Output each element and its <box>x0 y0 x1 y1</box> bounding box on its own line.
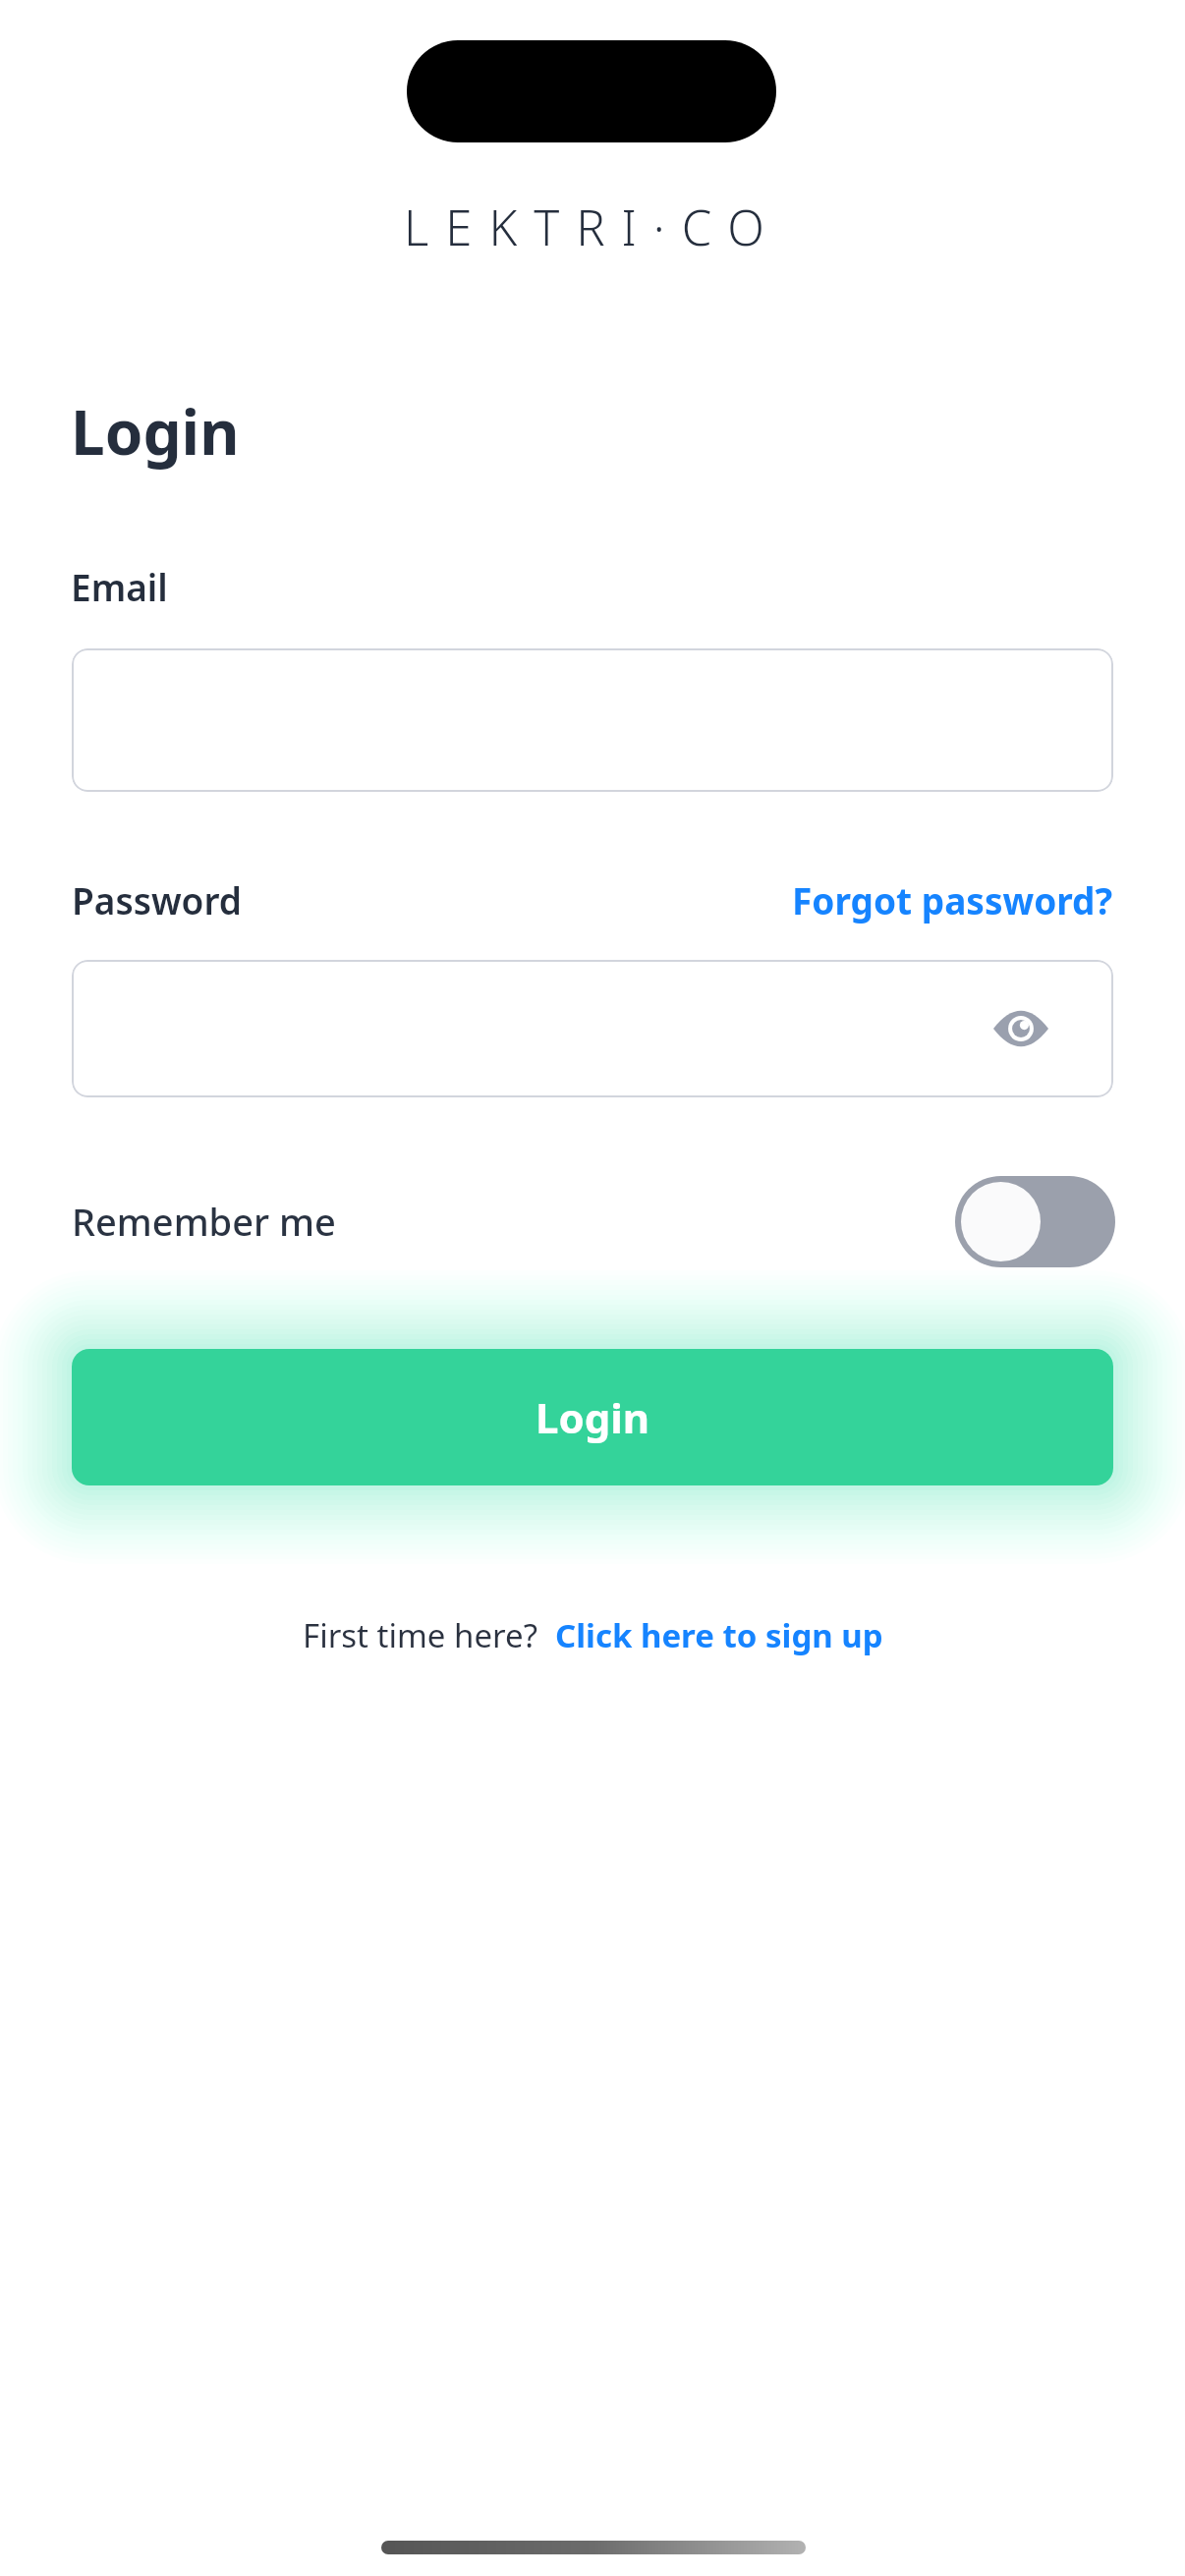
staticText: Click here to sign up <box>555 1613 883 1657</box>
staticText: First time here? <box>303 1613 537 1657</box>
button[interactable]: Email field <box>72 648 1113 792</box>
button[interactable]: Login <box>72 1349 1113 1485</box>
staticText: Login <box>536 1389 650 1445</box>
button[interactable]: Remember me <box>72 1175 1115 1267</box>
staticText: Forgot password? <box>792 875 1113 924</box>
button[interactable]: Password field <box>72 960 1113 1097</box>
button[interactable]: Forgot password? <box>792 875 1113 924</box>
staticText: LEKTRI·CO <box>404 195 781 259</box>
button[interactable]: Remember me toggle <box>955 1176 1115 1267</box>
staticText: Email <box>71 562 168 611</box>
staticText: Remember me <box>72 1196 336 1247</box>
button[interactable]: Click here to sign up <box>555 1613 883 1657</box>
staticText: Password <box>72 875 242 924</box>
button[interactable]: Show password <box>989 997 1052 1060</box>
staticText: Login <box>71 390 240 473</box>
